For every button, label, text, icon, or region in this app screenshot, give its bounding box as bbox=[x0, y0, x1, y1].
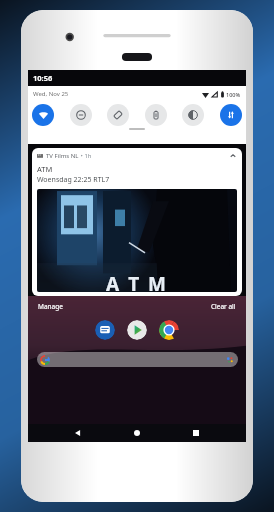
button[interactable]: Back bbox=[69, 424, 87, 442]
staticText: Wed, Nov 25 bbox=[33, 90, 69, 98]
button[interactable]: Do not disturb bbox=[70, 104, 92, 126]
button[interactable]: Wi-Fi bbox=[32, 104, 54, 126]
staticText: Clear all bbox=[211, 302, 236, 311]
button[interactable]: Battery Saver bbox=[145, 104, 167, 126]
button[interactable]: Play Store bbox=[127, 320, 147, 340]
staticText: 10:56 bbox=[33, 73, 53, 83]
button[interactable] bbox=[37, 352, 238, 367]
button[interactable]: Manage bbox=[36, 300, 65, 313]
button[interactable]: Auto-rotate bbox=[107, 104, 129, 126]
button[interactable]: Messages bbox=[95, 320, 115, 340]
staticText: A T M bbox=[37, 271, 237, 292]
staticText: • 1h bbox=[79, 152, 92, 160]
staticText: ATM bbox=[37, 164, 53, 174]
button[interactable]: Clear all bbox=[209, 300, 238, 313]
staticText: 100% bbox=[226, 91, 241, 98]
button[interactable]: Dark theme bbox=[182, 104, 204, 126]
staticText: Manage bbox=[38, 302, 63, 311]
button[interactable]: Home bbox=[128, 424, 146, 442]
button[interactable]: Collapse bbox=[229, 152, 237, 160]
button[interactable]: Mobile data bbox=[220, 104, 242, 126]
button[interactable]: Recents bbox=[187, 424, 205, 442]
button[interactable]: TV Films NL bbox=[32, 148, 242, 296]
staticText: TV Films NL bbox=[46, 152, 79, 160]
staticText: Woensdag 22:25 RTL7 bbox=[37, 175, 110, 185]
button[interactable]: Chrome bbox=[159, 320, 179, 340]
